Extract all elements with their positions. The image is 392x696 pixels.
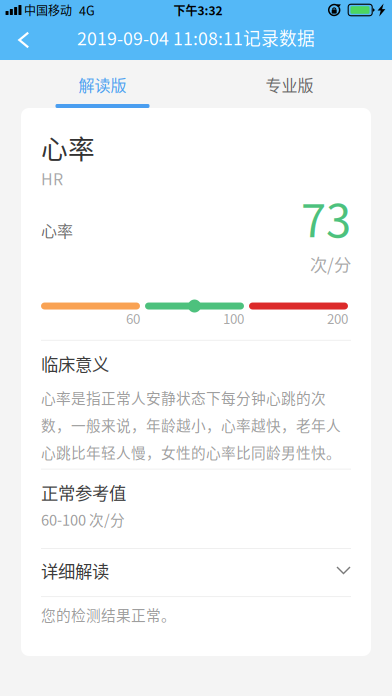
staticText: 4G xyxy=(79,1,95,19)
staticText: 73 xyxy=(301,185,351,250)
staticText: 次/分 xyxy=(310,251,351,276)
staticText: 心率 xyxy=(41,128,95,167)
staticText: 100 xyxy=(223,308,244,328)
staticText: 下午3:32 xyxy=(173,1,222,19)
button[interactable]: Back xyxy=(0,21,44,58)
staticText: 临床意义 xyxy=(41,351,109,376)
button[interactable]: 详细解读 xyxy=(41,549,351,596)
staticText: 心率 xyxy=(41,219,73,242)
staticText: 专业版 xyxy=(265,73,313,96)
staticText: 心率是指正常人安静状态下每分钟心跳的次数，一般来说，年龄越小，心率越快，老年人心… xyxy=(41,387,341,463)
staticText: 60 xyxy=(126,308,140,328)
staticText: 60-100 次/分 xyxy=(41,509,125,530)
staticText: HR xyxy=(41,167,63,190)
staticText: 正常参考值 xyxy=(41,480,126,505)
staticText: 解读版 xyxy=(78,73,126,96)
staticText: 中国移动 xyxy=(24,1,72,19)
staticText: 200 xyxy=(327,308,348,328)
button[interactable]: 专业版 xyxy=(196,60,383,108)
staticText: 2019-09-04 11:08:11记录数据 xyxy=(77,25,315,50)
staticText: 详细解读 xyxy=(41,558,109,583)
staticText: 您的检测结果正常。 xyxy=(41,604,176,625)
button[interactable]: 解读版 xyxy=(9,60,196,108)
